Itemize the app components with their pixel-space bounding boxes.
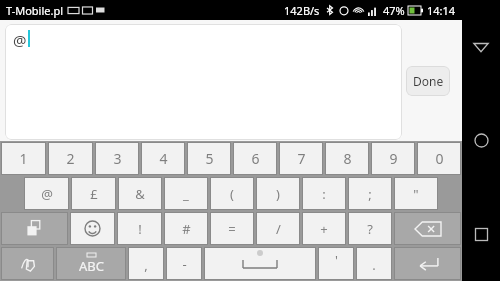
button[interactable]: 3 [95, 142, 139, 175]
staticText: # [182, 220, 191, 238]
staticText: - [182, 255, 187, 273]
button[interactable]: ABC [56, 247, 126, 280]
staticText: ; [368, 185, 372, 203]
button[interactable]: = [210, 212, 254, 245]
staticText: ABC [79, 257, 104, 275]
button[interactable]: 5 [187, 142, 231, 175]
button[interactable]: # [164, 212, 208, 245]
staticText: 47% [383, 3, 405, 18]
staticText: : [322, 185, 326, 203]
staticText: 142B/s [284, 3, 320, 18]
button[interactable]: @ [5, 24, 402, 140]
staticText: @ [13, 30, 27, 50]
button[interactable]: Enter [394, 247, 461, 280]
staticText: 8 [343, 149, 352, 168]
button[interactable]: ! [117, 212, 162, 245]
button[interactable]: ( [210, 177, 254, 210]
button[interactable]: Emoji [70, 212, 115, 245]
staticText: , [144, 256, 148, 274]
button[interactable]: 2 [48, 142, 93, 175]
staticText: 0 [435, 149, 444, 168]
staticText: 1 [19, 149, 28, 168]
staticText: ( [230, 185, 234, 203]
staticText: 7 [297, 149, 306, 168]
button[interactable]: / [256, 212, 300, 245]
staticText: 6 [251, 149, 260, 168]
button[interactable]: Recents [462, 187, 500, 281]
staticText: " [413, 185, 419, 203]
button[interactable]: Done [406, 66, 450, 96]
staticText: 2 [66, 149, 75, 168]
staticText: @ [41, 185, 53, 203]
staticText: ? [367, 220, 373, 238]
staticText: 14:14 [427, 3, 456, 18]
button[interactable]: : [302, 177, 346, 210]
button[interactable]: _ [164, 177, 208, 210]
button[interactable]: 7 [279, 142, 323, 175]
button[interactable]: & [118, 177, 162, 210]
button[interactable]: + [302, 212, 346, 245]
staticText: / [276, 220, 281, 238]
button[interactable]: 4 [141, 142, 185, 175]
button[interactable]: 1 [1, 142, 46, 175]
button[interactable]: 6 [233, 142, 277, 175]
staticText: _ [183, 185, 189, 203]
button[interactable]: @ [24, 177, 69, 210]
staticText: & [135, 185, 145, 203]
staticText: + [320, 220, 328, 238]
button[interactable]: Back [462, 0, 500, 93]
staticText: ) [276, 185, 280, 203]
staticText: 4 [159, 149, 168, 168]
staticText: £ [90, 185, 98, 203]
staticText: = [228, 220, 236, 238]
button[interactable]: ' [318, 247, 354, 280]
button[interactable]: ? [348, 212, 392, 245]
button[interactable]: ) [256, 177, 300, 210]
staticText: 3 [113, 149, 122, 168]
button[interactable]: Symbols [1, 212, 68, 245]
staticText: ! [138, 220, 142, 238]
button[interactable]: 0 [417, 142, 461, 175]
button[interactable]: £ [71, 177, 116, 210]
button[interactable]: . [356, 247, 392, 280]
button[interactable]: , [128, 247, 164, 280]
button[interactable]: Home [462, 93, 500, 187]
button[interactable]: ; [348, 177, 392, 210]
button[interactable]: Handwriting [1, 247, 54, 280]
button[interactable]: Backspace [394, 212, 461, 245]
staticText: T-Mobile.pl [6, 3, 64, 18]
button[interactable]: 8 [325, 142, 369, 175]
button[interactable]: " [394, 177, 438, 210]
staticText: 5 [205, 149, 214, 168]
staticText: Done [413, 73, 444, 89]
staticText: . [372, 256, 376, 274]
button[interactable]: 9 [371, 142, 415, 175]
staticText: ' [335, 251, 338, 269]
button[interactable]: Space [204, 247, 316, 280]
staticText: 9 [389, 149, 398, 168]
button[interactable]: - [166, 247, 202, 280]
